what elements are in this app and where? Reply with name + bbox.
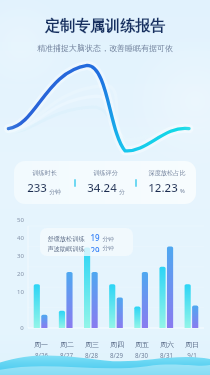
staticText: 8/28 [85,351,98,359]
staticText: 周五 [135,340,149,349]
staticText: 8/26 [35,351,48,359]
staticText: 定制专属训练报告 [45,17,165,36]
staticText: 8/31 [160,351,173,359]
staticText: 19 [90,232,100,243]
staticText: 8/30 [135,351,148,359]
staticText: % [180,187,185,195]
staticText: 8/27 [60,351,73,359]
staticText: 30 [17,252,24,260]
staticText: 9/1 [187,351,197,359]
staticText: 周二 [60,340,74,349]
staticText: 深度放松占比 [148,169,186,177]
staticText: 29 [90,245,100,252]
staticText: 8/29 [110,351,123,359]
staticText: 周三 [85,340,99,349]
staticText: 分钟 [49,188,61,195]
staticText: 12.23 [148,180,178,196]
staticText: 10 [17,288,24,296]
staticText: 40 [17,234,24,242]
staticText: 20 [17,270,24,278]
staticText: 周日 [185,340,199,349]
staticText: 分 [119,188,125,195]
button[interactable]: 训练时长 [14,161,196,204]
staticText: 34.24 [87,180,117,196]
staticText: 50 [17,216,24,224]
button[interactable]: 舒缓放松训练 [40,228,133,256]
staticText: 周一 [34,340,48,349]
staticText: 训练时长 [32,169,57,177]
staticText: 233 [27,180,47,196]
staticText: 舒缓放松训练 [47,235,85,243]
staticText: 分钟 [102,245,114,252]
staticText: 周六 [160,340,174,349]
staticText: 0 [20,324,24,332]
staticText: 精准捕捉大脑状态，改善睡眠有据可依 [37,43,173,53]
staticText: 分钟 [102,236,114,243]
staticText: 训练评分 [93,169,118,177]
staticText: 声波助眠训练 [47,245,85,252]
staticText: 周四 [110,340,124,349]
